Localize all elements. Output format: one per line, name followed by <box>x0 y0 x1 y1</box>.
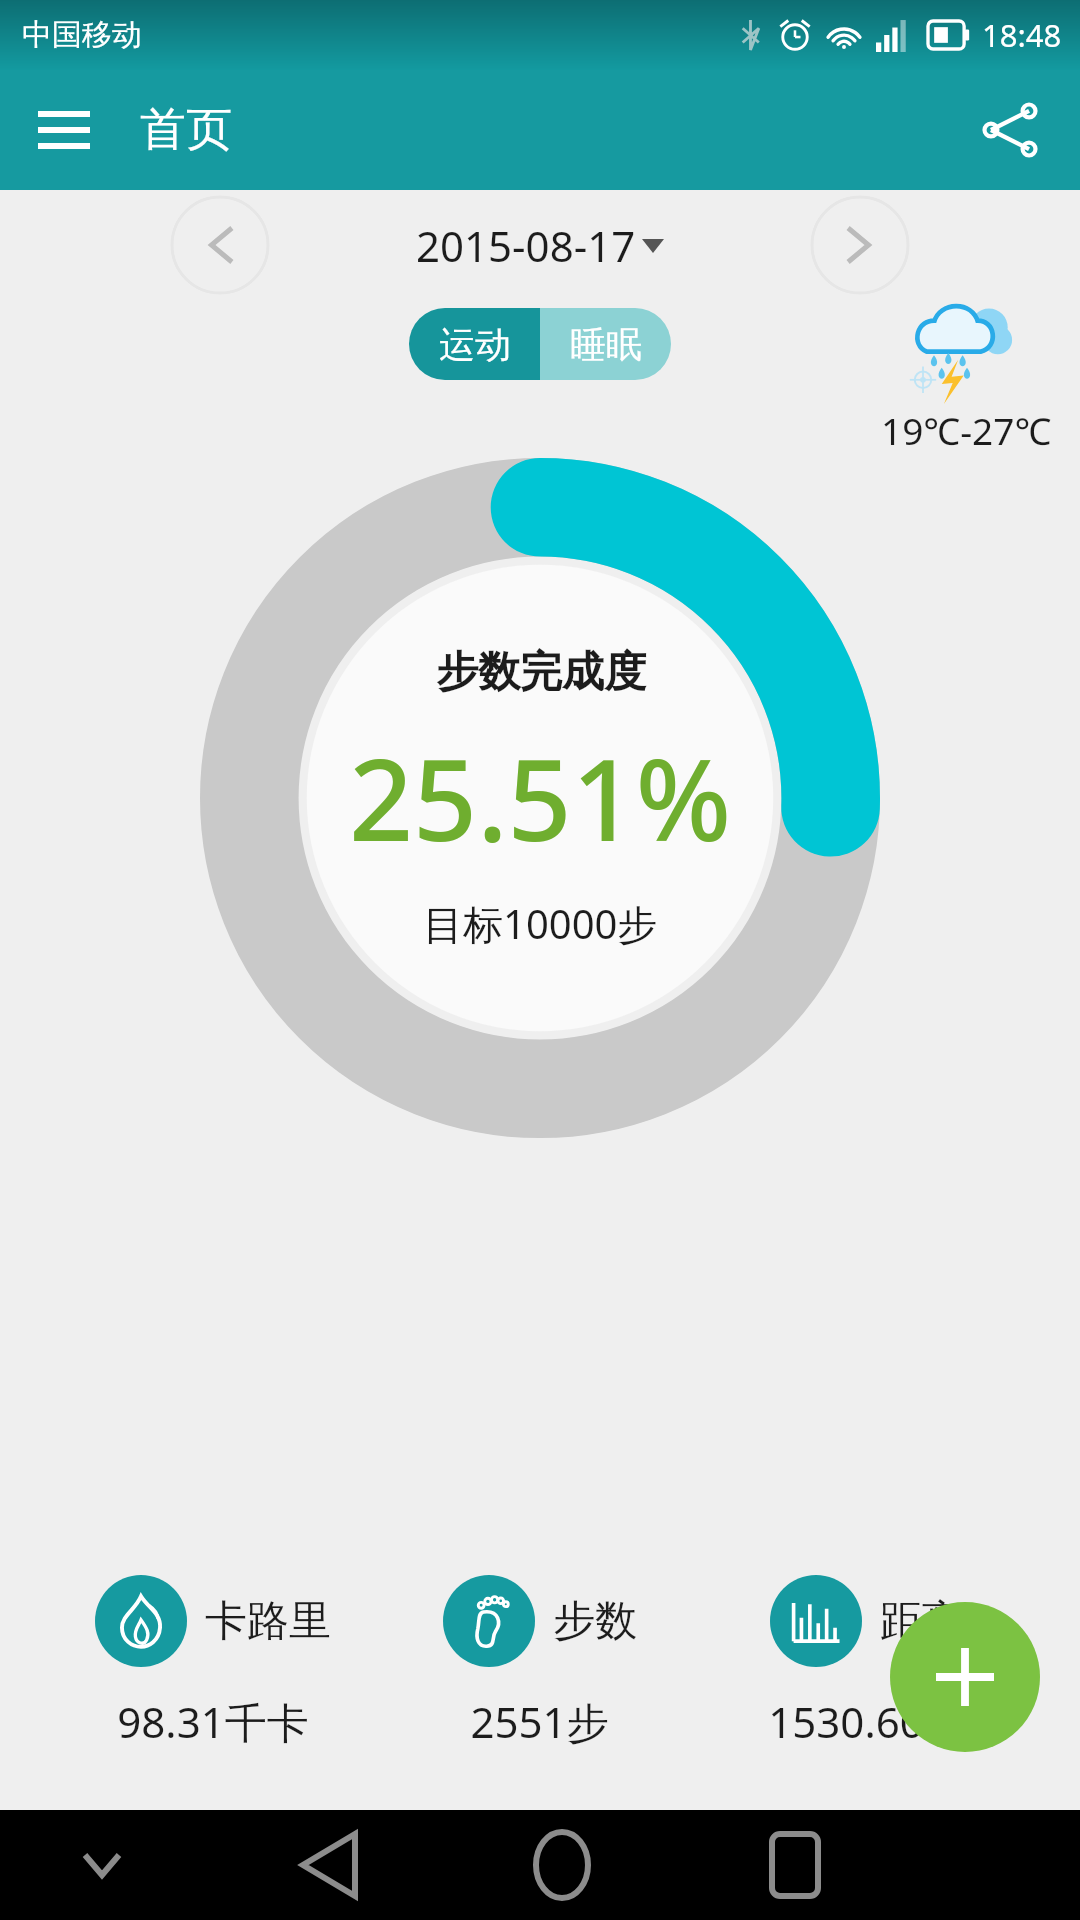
staticText: 19℃-27℃ <box>881 405 1052 450</box>
staticText: 2015-08-17 <box>416 217 636 274</box>
button[interactable]: Recents <box>747 1817 843 1913</box>
button[interactable]: Share <box>970 90 1050 170</box>
staticText: 1530.60米 <box>768 1693 966 1750</box>
staticText: 距离 <box>880 1595 964 1648</box>
staticText: 步数完成度 <box>436 646 646 699</box>
staticText: 2551步 <box>470 1693 609 1750</box>
button[interactable]: Hide <box>60 1823 144 1907</box>
button[interactable]: Menu <box>28 94 100 166</box>
button[interactable]: Add <box>890 1602 1040 1752</box>
staticText: 25.51% <box>349 721 732 874</box>
button[interactable]: 距离 <box>703 1575 1030 1667</box>
staticText: 中国移动 <box>22 16 142 54</box>
staticText: 睡眠 <box>570 322 642 367</box>
staticText: 首页 <box>140 101 232 159</box>
button[interactable]: Next day <box>810 195 910 295</box>
button[interactable]: 步数 <box>376 1575 703 1667</box>
staticText: 步数 <box>553 1595 637 1648</box>
staticText: 卡路里 <box>205 1595 331 1648</box>
staticText: 运动 <box>439 322 511 367</box>
staticText: 18:48 <box>982 14 1062 56</box>
button[interactable]: 卡路里 <box>50 1575 376 1667</box>
staticText: 98.31千卡 <box>117 1693 309 1750</box>
button[interactable]: 运动 <box>409 308 540 380</box>
button[interactable]: Home <box>514 1817 610 1913</box>
button[interactable]: 睡眠 <box>540 308 671 380</box>
staticText: 目标10000步 <box>423 896 658 951</box>
button[interactable]: Previous day <box>170 195 270 295</box>
button[interactable]: Back <box>281 1817 377 1913</box>
